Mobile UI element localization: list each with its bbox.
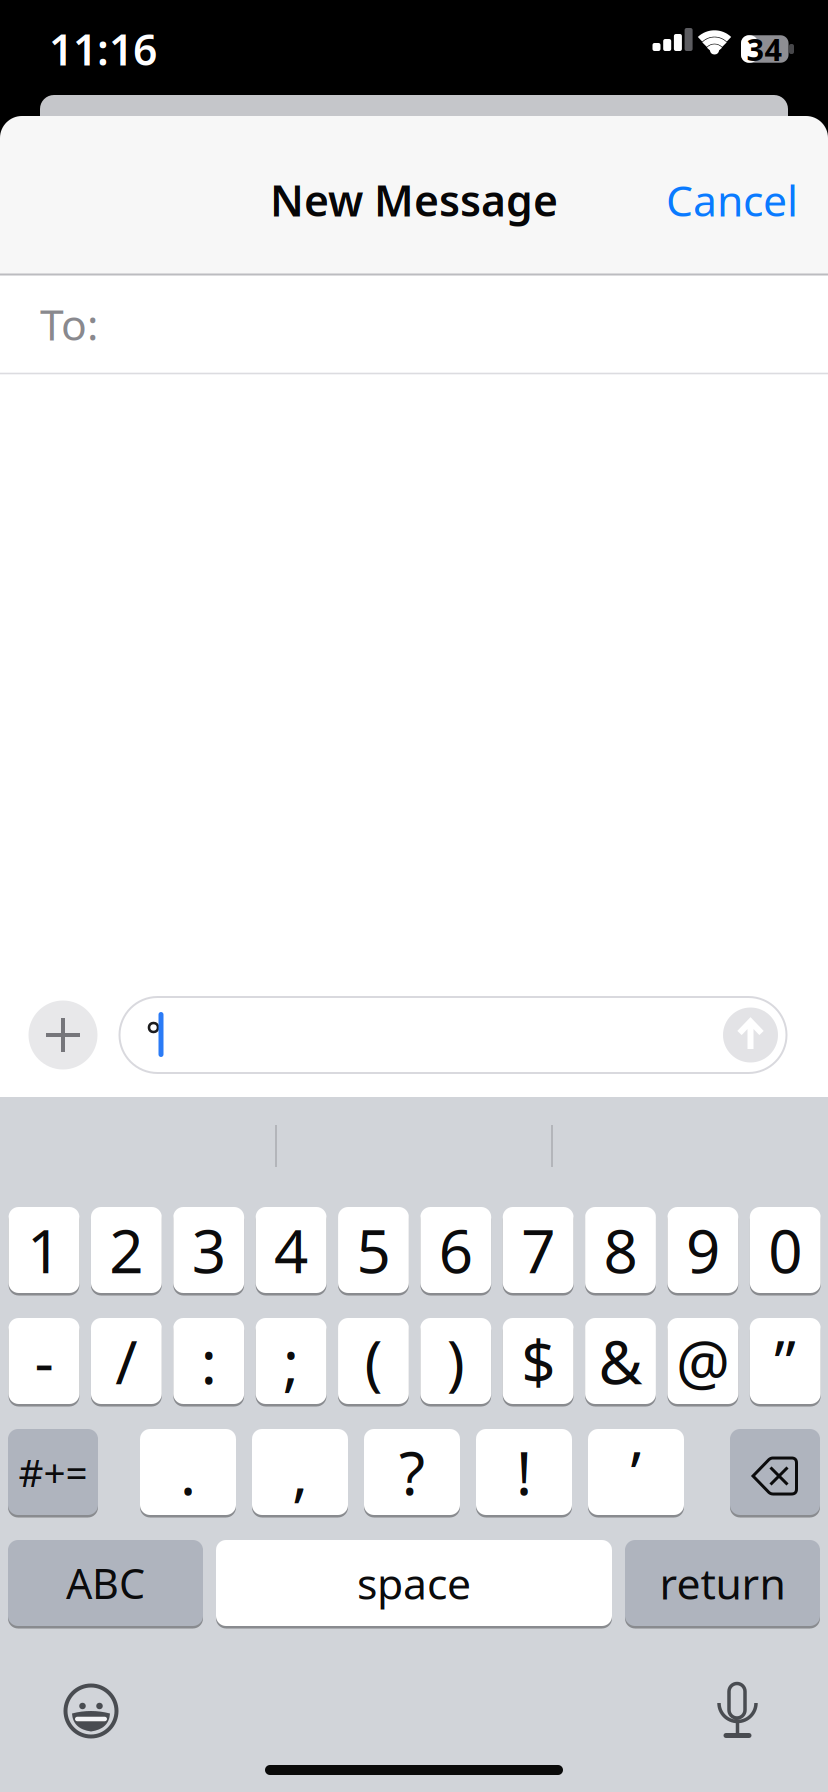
button[interactable]: space bbox=[216, 1540, 612, 1626]
button[interactable]: #+= bbox=[8, 1429, 98, 1515]
staticText: $ bbox=[521, 1321, 555, 1401]
button[interactable]: 9 bbox=[667, 1207, 738, 1293]
button[interactable]: ; bbox=[256, 1318, 326, 1404]
button[interactable]: 8 bbox=[585, 1207, 656, 1293]
button[interactable]: . bbox=[140, 1429, 236, 1515]
staticText: 0 bbox=[768, 1210, 802, 1290]
staticText: / bbox=[115, 1321, 137, 1401]
button[interactable]: ABC bbox=[8, 1540, 203, 1626]
staticText: & bbox=[598, 1321, 642, 1401]
staticText: ABC bbox=[66, 1556, 145, 1610]
staticText: 4 bbox=[274, 1210, 308, 1290]
staticText: 6 bbox=[439, 1210, 473, 1290]
staticText: 1 bbox=[27, 1210, 61, 1290]
button[interactable]: ? bbox=[364, 1429, 460, 1515]
staticText: ? bbox=[399, 1432, 425, 1512]
button[interactable]: 0 bbox=[750, 1207, 821, 1293]
staticText: 7 bbox=[521, 1210, 555, 1290]
button[interactable] bbox=[63, 1683, 119, 1739]
staticText: ” bbox=[774, 1321, 796, 1401]
button[interactable]: 6 bbox=[420, 1207, 491, 1293]
staticText: Cancel bbox=[666, 172, 798, 228]
staticText: ’ bbox=[630, 1432, 641, 1512]
staticText: 11:16 bbox=[49, 21, 157, 77]
staticText: - bbox=[34, 1321, 53, 1401]
button[interactable]: return bbox=[625, 1540, 820, 1626]
staticText: 9 bbox=[686, 1210, 720, 1290]
staticText: #+= bbox=[18, 1446, 87, 1498]
button[interactable]: ” bbox=[750, 1318, 821, 1404]
button[interactable]: ) bbox=[420, 1318, 491, 1404]
button[interactable]: Cancel bbox=[622, 165, 828, 235]
staticText: ; bbox=[283, 1321, 299, 1401]
staticText: To: bbox=[40, 296, 98, 352]
button[interactable] bbox=[712, 1672, 762, 1742]
staticText: : bbox=[201, 1321, 217, 1401]
button[interactable] bbox=[730, 1429, 820, 1515]
button[interactable]: 3 bbox=[173, 1207, 244, 1293]
staticText: @ bbox=[676, 1321, 730, 1401]
staticText: 8 bbox=[603, 1210, 637, 1290]
button[interactable]: : bbox=[173, 1318, 244, 1404]
button[interactable]: 7 bbox=[503, 1207, 574, 1293]
button[interactable] bbox=[723, 1007, 778, 1062]
staticText: space bbox=[357, 1555, 471, 1611]
staticText: 34 bbox=[746, 29, 782, 69]
button[interactable]: @ bbox=[667, 1318, 738, 1404]
staticText: 3 bbox=[192, 1210, 226, 1290]
button[interactable]: 5 bbox=[338, 1207, 409, 1293]
staticText: . bbox=[180, 1432, 196, 1512]
button[interactable]: & bbox=[585, 1318, 656, 1404]
button[interactable]: ’ bbox=[588, 1429, 684, 1515]
button[interactable] bbox=[119, 997, 786, 1073]
button[interactable]: - bbox=[9, 1318, 79, 1404]
button[interactable]: 1 bbox=[9, 1207, 79, 1293]
staticText: New Message bbox=[270, 172, 558, 228]
staticText: ) bbox=[447, 1321, 465, 1401]
button[interactable]: 2 bbox=[91, 1207, 162, 1293]
staticText: , bbox=[292, 1432, 308, 1512]
button[interactable]: ( bbox=[338, 1318, 409, 1404]
staticText: return bbox=[659, 1555, 785, 1611]
staticText: ( bbox=[364, 1321, 382, 1401]
button[interactable]: 4 bbox=[256, 1207, 326, 1293]
button[interactable] bbox=[28, 1000, 97, 1069]
button[interactable]: , bbox=[252, 1429, 348, 1515]
staticText: 5 bbox=[356, 1210, 390, 1290]
button[interactable]: / bbox=[91, 1318, 162, 1404]
button[interactable]: $ bbox=[503, 1318, 574, 1404]
staticText: ! bbox=[516, 1432, 532, 1512]
button[interactable]: ! bbox=[476, 1429, 572, 1515]
staticText: 2 bbox=[109, 1210, 143, 1290]
button[interactable]: To: bbox=[0, 275, 828, 373]
